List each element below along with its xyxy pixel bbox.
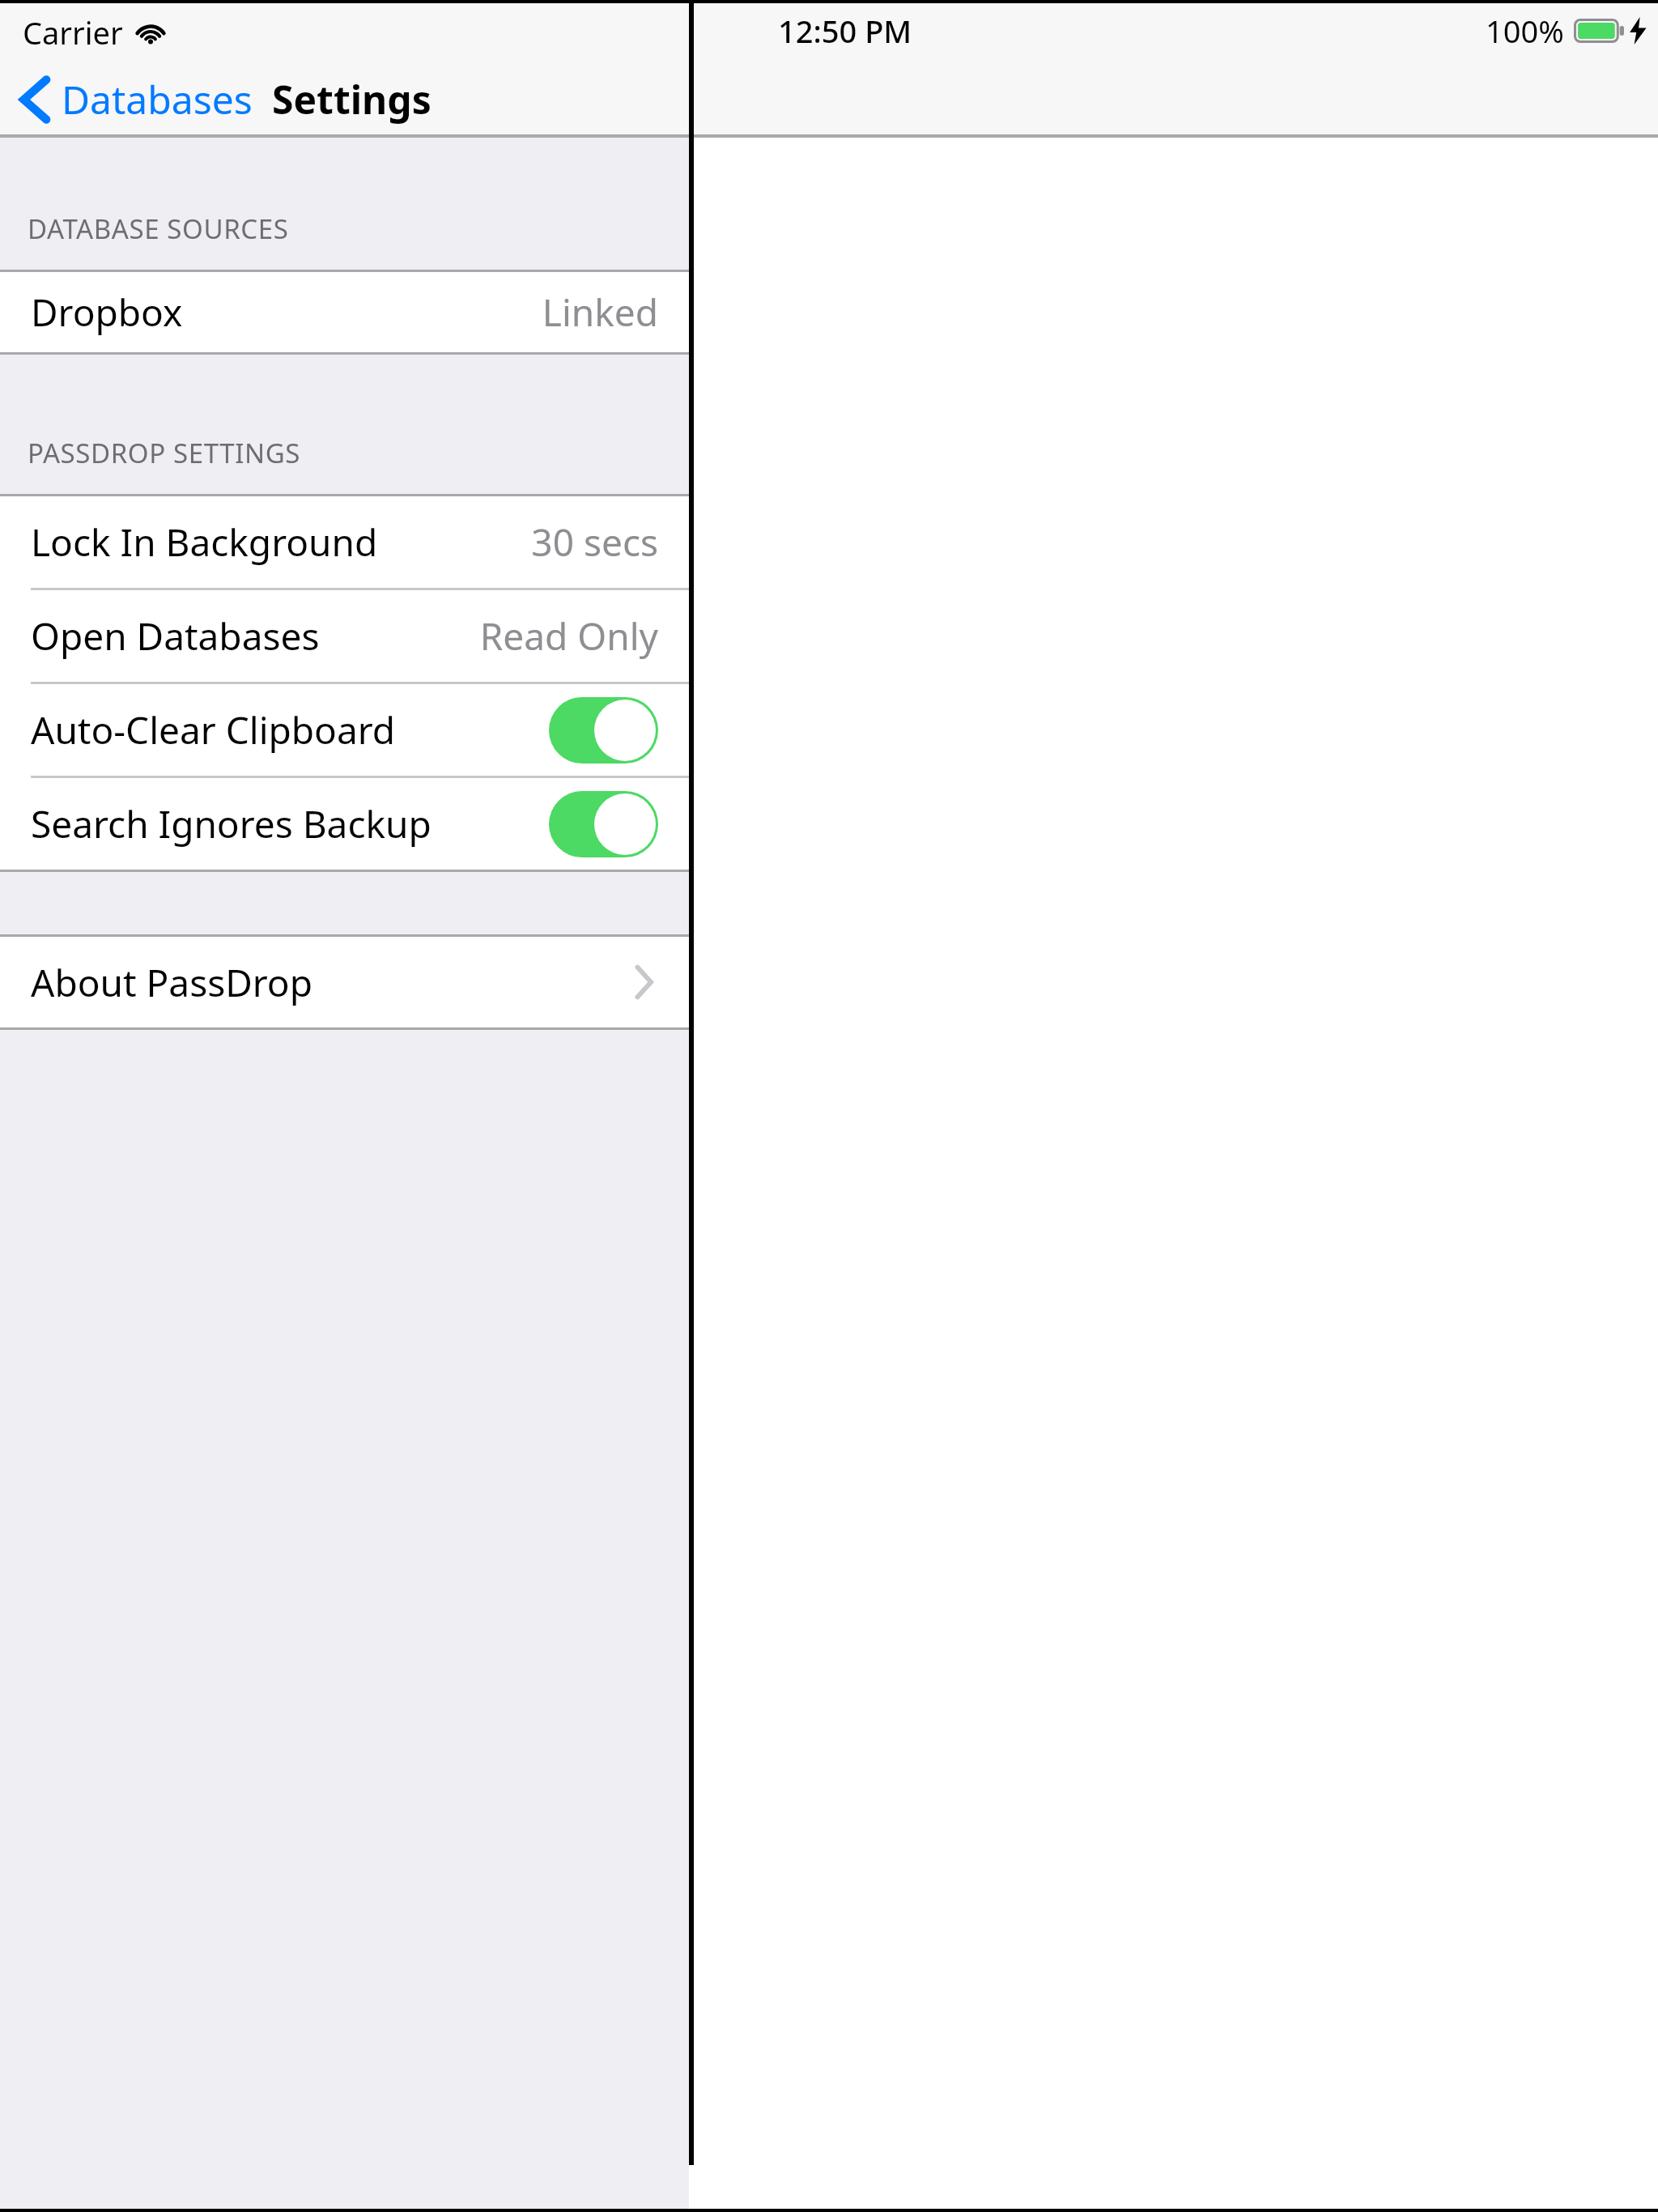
button[interactable]: Auto-Clear Clipboard bbox=[0, 684, 689, 776]
staticText: 100% bbox=[1486, 10, 1564, 52]
button[interactable]: Dropbox bbox=[0, 272, 689, 352]
button[interactable]: Open Databases bbox=[0, 590, 689, 682]
staticText: Settings bbox=[272, 73, 432, 125]
button[interactable]: Toggle bbox=[549, 697, 658, 764]
button[interactable]: Back bbox=[15, 65, 259, 134]
staticText: PASSDROP SETTINGS bbox=[28, 435, 300, 471]
staticText: Open Databases bbox=[31, 610, 320, 661]
staticText: Databases bbox=[62, 73, 253, 125]
button[interactable]: About PassDrop bbox=[0, 937, 689, 1027]
staticText: Search Ignores Backup bbox=[31, 798, 432, 849]
staticText: 12:50 PM bbox=[778, 10, 912, 52]
other: Back bbox=[21, 77, 49, 122]
staticText: Dropbox bbox=[31, 287, 183, 338]
staticText: About PassDrop bbox=[31, 957, 312, 1008]
staticText: Carrier bbox=[23, 11, 123, 53]
button[interactable]: Lock In Background bbox=[0, 496, 689, 588]
staticText: Auto-Clear Clipboard bbox=[31, 704, 396, 755]
staticText: Linked bbox=[542, 287, 658, 338]
staticText: Lock In Background bbox=[31, 517, 378, 568]
staticText: 30 secs bbox=[531, 517, 658, 568]
button[interactable]: Toggle bbox=[549, 791, 658, 857]
staticText: Read Only bbox=[479, 610, 658, 661]
staticText: DATABASE SOURCES bbox=[28, 211, 289, 247]
button[interactable]: Search Ignores Backup bbox=[0, 778, 689, 870]
